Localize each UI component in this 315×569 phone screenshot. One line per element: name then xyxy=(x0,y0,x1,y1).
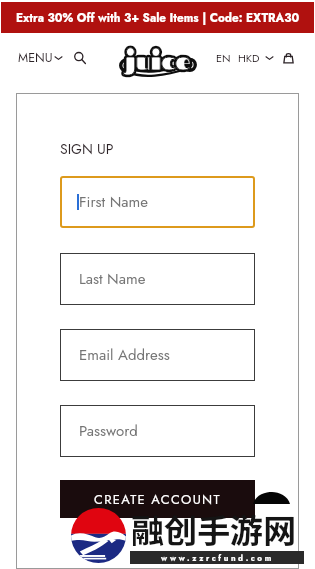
button[interactable]: First Name xyxy=(60,176,255,228)
staticText: www.zzrcfund.com xyxy=(161,552,274,564)
button[interactable]: Shopping bag xyxy=(281,51,295,65)
staticText: SIGN UP xyxy=(60,139,114,159)
staticText: Password xyxy=(79,420,138,442)
staticText: 融创手游网 xyxy=(131,505,296,553)
button[interactable]: MENU xyxy=(18,49,62,67)
button[interactable]: Email Address xyxy=(60,329,255,381)
button[interactable]: CREATE ACCOUNT xyxy=(60,480,255,518)
staticText: juice xyxy=(125,45,191,77)
button[interactable]: Password xyxy=(60,405,255,457)
staticText: MENU xyxy=(18,49,53,67)
button[interactable]: juice home xyxy=(121,45,195,77)
staticText: Last Name xyxy=(79,268,146,290)
button[interactable]: Last Name xyxy=(60,253,255,305)
staticText: HKD xyxy=(238,50,260,66)
staticText: CREATE ACCOUNT xyxy=(94,490,221,509)
button[interactable]: Extra 30% Off with 3+ Sale Items | Code:… xyxy=(1,2,314,33)
button[interactable]: HKD xyxy=(238,50,273,66)
staticText: First Name xyxy=(79,191,148,213)
staticText: Email Address xyxy=(79,344,170,366)
staticText: Extra 30% Off with 3+ Sale Items | Code:… xyxy=(16,9,300,26)
button[interactable]: EN xyxy=(216,50,231,66)
staticText: juice xyxy=(125,45,191,77)
button[interactable]: Search xyxy=(72,50,88,66)
staticText: juice xyxy=(125,45,191,77)
